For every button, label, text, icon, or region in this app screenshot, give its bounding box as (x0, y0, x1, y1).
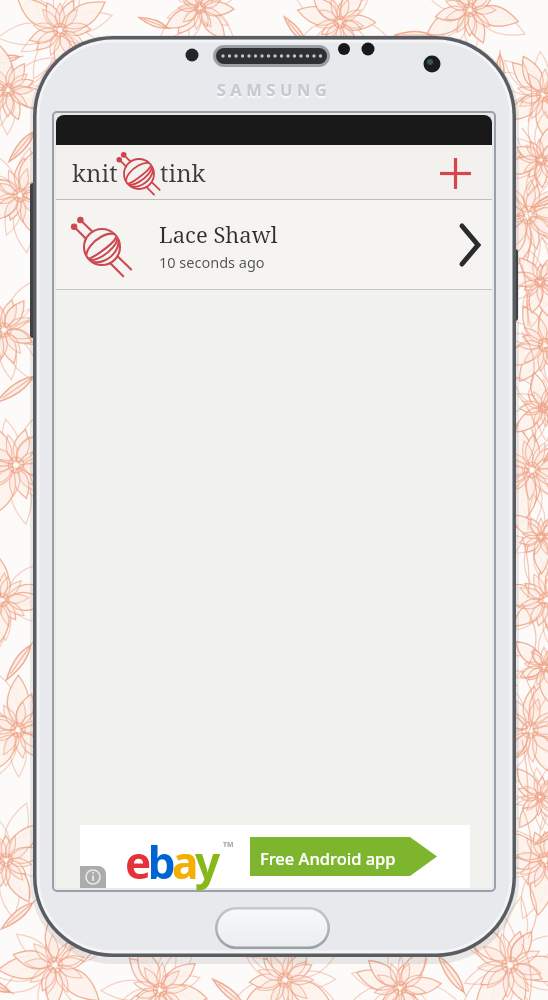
button[interactable] (215, 907, 330, 949)
staticText: knit (72, 156, 118, 189)
button[interactable]: Lace Shawl (56, 200, 492, 290)
staticText: ebay (125, 832, 217, 892)
button[interactable] (428, 146, 482, 200)
staticText: Lace Shawl (159, 219, 278, 249)
staticText: 10 seconds ago (159, 252, 265, 272)
button[interactable] (80, 866, 106, 888)
staticText: Free Android app (260, 847, 396, 869)
staticText: SAMSUNG (0, 78, 548, 100)
staticText: TM (223, 840, 234, 850)
button[interactable]: ebay (80, 825, 470, 888)
staticText: tink (160, 156, 206, 189)
